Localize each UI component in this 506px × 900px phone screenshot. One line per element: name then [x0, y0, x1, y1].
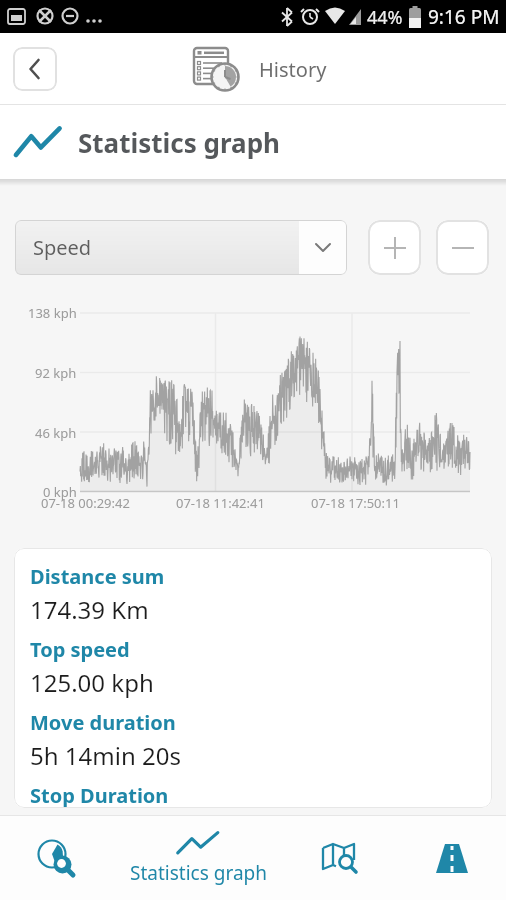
staticText: 46 kph [35, 424, 77, 442]
staticText: 125.00 kph [30, 666, 154, 699]
button[interactable] [368, 220, 421, 275]
staticText: Distance sum [30, 563, 165, 590]
staticText: 9:16 PM [428, 4, 500, 30]
button[interactable] [436, 220, 489, 275]
button[interactable] [13, 47, 57, 91]
staticText: History [259, 56, 327, 83]
staticText: 5h 14min 20s [30, 739, 181, 772]
staticText: 92 kph [35, 364, 77, 382]
button[interactable] [0, 816, 114, 900]
staticText: 174.39 Km [30, 593, 149, 626]
button[interactable]: Statistics graph [114, 816, 282, 900]
staticText: Stop Duration [30, 782, 169, 808]
staticText: Statistics graph [78, 125, 281, 160]
staticText: 07-18 17:50:11 [311, 494, 400, 512]
button[interactable] [282, 816, 398, 900]
staticText: Move duration [30, 709, 176, 736]
button[interactable]: Speed [15, 220, 347, 275]
staticText: 44% [367, 5, 403, 30]
staticText: 07-18 00:29:42 [41, 494, 130, 512]
staticText: 0 kph [43, 483, 77, 501]
staticText: 138 kph [28, 304, 77, 322]
staticText: Speed [33, 234, 299, 261]
button[interactable] [398, 816, 506, 900]
staticText: Statistics graph [130, 860, 267, 886]
staticText: Top speed [30, 636, 130, 663]
staticText: 07-18 11:42:41 [176, 494, 265, 512]
